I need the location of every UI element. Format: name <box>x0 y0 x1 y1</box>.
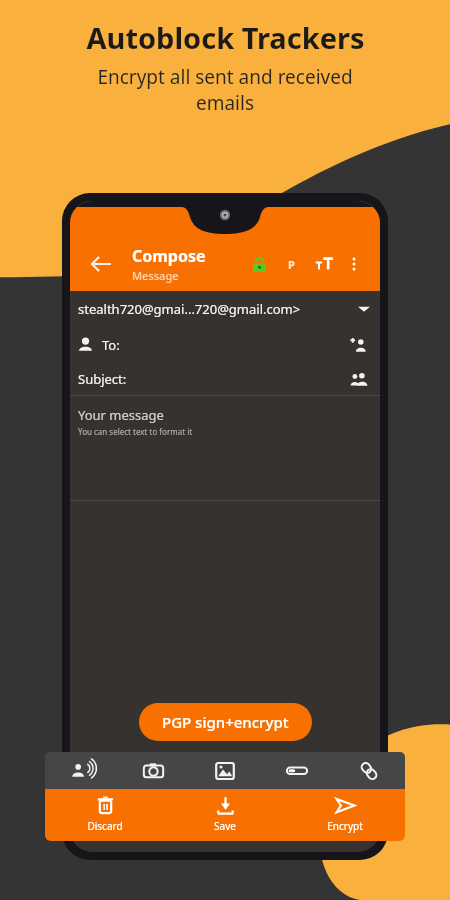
button[interactable]: stealth720@gmai...720@gmail.com> <box>70 291 380 327</box>
button[interactable]: Add recipients <box>346 366 372 392</box>
staticText: PGP sign+encrypt <box>162 712 289 732</box>
button[interactable]: Back <box>84 247 118 281</box>
button[interactable]: Your message <box>70 400 380 500</box>
staticText: Encrypt all sent and received emails <box>97 64 353 115</box>
staticText: P <box>288 257 295 272</box>
staticText: Compose <box>132 245 206 267</box>
staticText: You can select text to format it <box>78 426 193 437</box>
button[interactable]: Encryption on <box>246 251 272 277</box>
button[interactable]: Attach image <box>189 752 261 789</box>
button[interactable]: PGP sign+encrypt <box>139 703 312 741</box>
staticText: stealth720@gmai...720@gmail.com> <box>78 300 358 318</box>
button[interactable]: Attach link <box>333 752 405 789</box>
staticText: Encrypt <box>327 819 363 833</box>
staticText: Discard <box>87 819 123 833</box>
button[interactable]: To: <box>70 327 380 362</box>
staticText: Subject: <box>78 370 127 388</box>
button[interactable]: More options <box>342 252 366 276</box>
button[interactable]: Add contact <box>346 332 372 358</box>
staticText: Message <box>132 268 179 283</box>
staticText: Autoblock Trackers <box>86 18 365 57</box>
button[interactable]: Encrypt <box>285 789 405 841</box>
button[interactable]: Text size <box>310 250 338 278</box>
staticText: Save <box>214 819 236 833</box>
button[interactable]: Subject: <box>70 362 380 395</box>
button[interactable]: Record audio <box>45 752 117 789</box>
button[interactable]: PGP <box>280 253 302 275</box>
staticText: Your message <box>78 406 164 424</box>
button[interactable]: Save <box>165 789 285 841</box>
staticText: To: <box>102 336 120 354</box>
button[interactable]: Take photo <box>117 752 189 789</box>
button[interactable]: Discard <box>45 789 165 841</box>
button[interactable]: Attach file <box>261 752 333 789</box>
